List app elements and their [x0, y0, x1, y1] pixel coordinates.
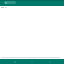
button[interactable]: Profile [47, 59, 53, 64]
other: Search [5, 2, 7, 4]
button[interactable]: Explore [29, 59, 35, 64]
button[interactable]: Home [12, 59, 18, 64]
button[interactable]: Search [4, 1, 16, 4]
button[interactable] [0, 6, 64, 9]
